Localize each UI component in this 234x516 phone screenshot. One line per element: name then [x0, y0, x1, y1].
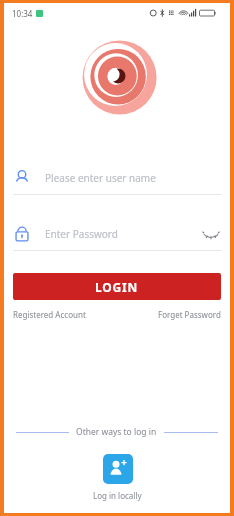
button[interactable]: Registered Account — [13, 309, 86, 320]
button[interactable]: Please enter user name — [13, 167, 221, 195]
staticText: Registered Account — [13, 309, 86, 320]
button[interactable]: LOGIN — [13, 273, 221, 300]
staticText: Forget Password — [158, 309, 221, 320]
staticText: Log in locally — [93, 490, 142, 501]
button[interactable]: Enter Password — [13, 223, 221, 251]
button[interactable]: Forget Password — [158, 309, 221, 320]
button[interactable]: Show password — [201, 224, 221, 244]
staticText: Other ways to log in — [76, 426, 157, 438]
staticText: 10:34 — [12, 8, 33, 19]
other: Log in locally — [103, 454, 133, 484]
staticText: Please enter user name — [45, 171, 221, 185]
staticText: LOGIN — [95, 279, 139, 295]
button[interactable]: Log in locally — [93, 454, 142, 501]
staticText: Enter Password — [45, 227, 201, 241]
